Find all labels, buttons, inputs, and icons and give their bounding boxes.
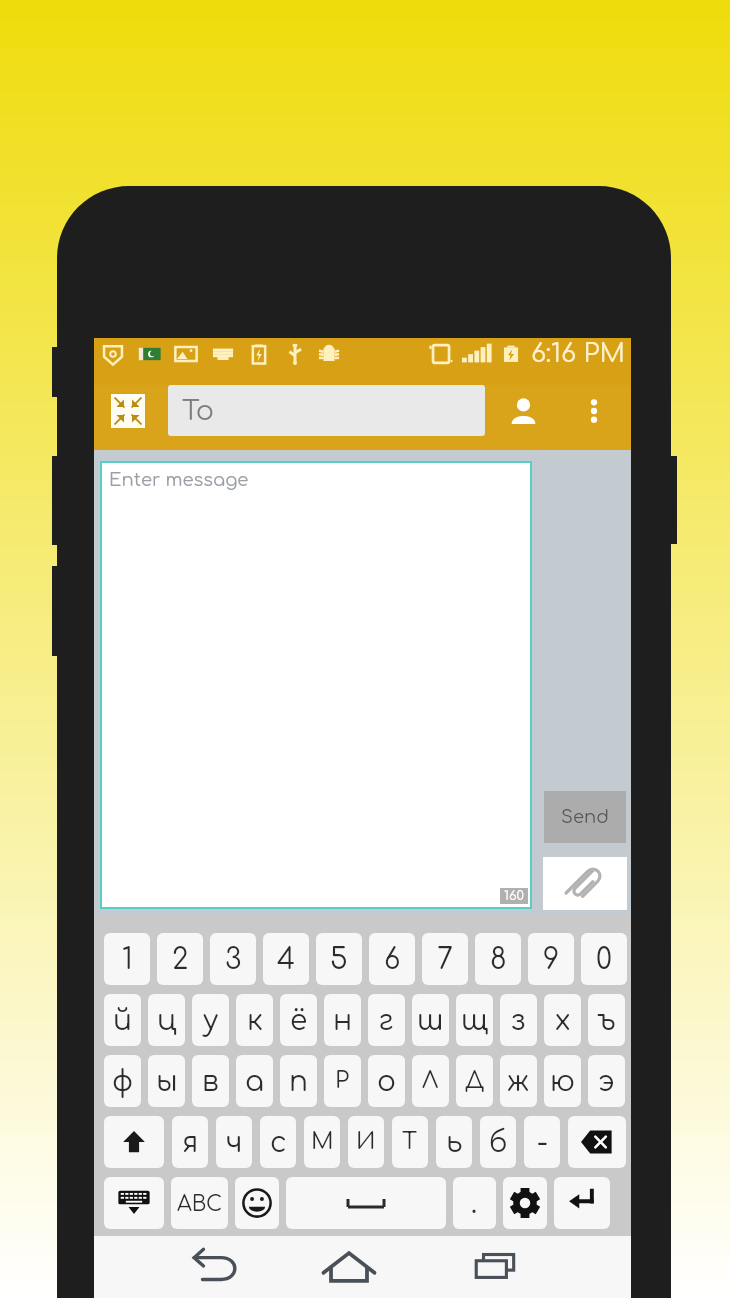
button[interactable]: 0 [581, 933, 627, 985]
button[interactable]: Back [156, 1236, 275, 1298]
staticText: а [245, 1066, 264, 1097]
button[interactable]: Collapse [106, 389, 150, 433]
button[interactable]: б [480, 1116, 516, 1168]
staticText: . [471, 1188, 478, 1219]
button[interactable]: 6 [369, 933, 415, 985]
staticText: э [598, 1066, 615, 1097]
button[interactable]: 4 [263, 933, 309, 985]
staticText: 6:16 PM [531, 339, 626, 368]
staticText: 4 [277, 944, 296, 975]
staticText: ё [290, 1005, 308, 1036]
button[interactable]: ч [216, 1116, 252, 1168]
staticText: ц [157, 1005, 177, 1036]
button[interactable]: Т [392, 1116, 428, 1168]
button[interactable]: Л [412, 1055, 449, 1107]
button[interactable]: э [588, 1055, 625, 1107]
button[interactable]: Shift [104, 1116, 164, 1168]
staticText: Send [561, 807, 609, 827]
button[interactable]: ж [500, 1055, 537, 1107]
staticText: М [311, 1129, 334, 1155]
button[interactable]: с [260, 1116, 296, 1168]
button[interactable]: г [368, 994, 405, 1046]
button[interactable]: ц [148, 994, 185, 1046]
button[interactable]: 2 [157, 933, 203, 985]
button[interactable]: х [544, 994, 581, 1046]
button[interactable]: з [500, 994, 537, 1046]
button[interactable]: ь [436, 1116, 472, 1168]
button[interactable]: ABC [171, 1177, 228, 1229]
button[interactable]: н [324, 994, 361, 1046]
staticText: ABC [177, 1192, 223, 1215]
button[interactable] [286, 1177, 446, 1229]
button[interactable]: я [172, 1116, 208, 1168]
staticText: 9 [543, 944, 560, 975]
staticText: 160 [504, 889, 524, 903]
button[interactable]: Д [456, 1055, 493, 1107]
staticText: ь [446, 1127, 463, 1158]
button[interactable]: 9 [528, 933, 574, 985]
button[interactable]: щ [456, 994, 493, 1046]
button[interactable]: у [192, 994, 229, 1046]
button[interactable]: 5 [316, 933, 362, 985]
button[interactable]: ю [544, 1055, 581, 1107]
staticText: х [555, 1005, 571, 1036]
button[interactable]: й [104, 994, 141, 1046]
button[interactable]: Settings [503, 1177, 547, 1229]
staticText: ф [112, 1066, 134, 1097]
staticText: Т [402, 1129, 418, 1155]
button[interactable]: к [236, 994, 273, 1046]
staticText: к [247, 1005, 263, 1036]
button[interactable]: а [236, 1055, 273, 1107]
button[interactable]: 3 [210, 933, 256, 985]
staticText: 0 [596, 944, 612, 975]
button[interactable]: 1 [104, 933, 150, 985]
staticText: - [537, 1127, 548, 1158]
staticText: 8 [490, 944, 507, 975]
staticText: 1 [122, 944, 133, 975]
button[interactable]: о [368, 1055, 405, 1107]
staticText: 3 [225, 944, 242, 975]
button[interactable]: М [304, 1116, 340, 1168]
button[interactable]: 7 [422, 933, 468, 985]
staticText: о [377, 1066, 396, 1097]
button[interactable]: Р [324, 1055, 361, 1107]
staticText: ы [156, 1066, 178, 1097]
staticText: щ [461, 1005, 489, 1036]
button[interactable]: ш [412, 994, 449, 1046]
button[interactable]: ы [148, 1055, 185, 1107]
button[interactable]: ё [280, 994, 317, 1046]
button[interactable]: Enter [554, 1177, 610, 1229]
button[interactable]: 8 [475, 933, 521, 985]
button[interactable]: More options [574, 391, 614, 431]
button[interactable]: Emoji [235, 1177, 279, 1229]
button[interactable]: . [453, 1177, 496, 1229]
staticText: п [289, 1066, 308, 1097]
staticText: 5 [330, 944, 348, 975]
staticText: н [333, 1005, 353, 1036]
staticText: у [203, 1005, 219, 1036]
button[interactable]: И [348, 1116, 384, 1168]
staticText: в [202, 1066, 219, 1097]
button[interactable]: To [168, 385, 485, 436]
button[interactable]: п [280, 1055, 317, 1107]
staticText: И [356, 1129, 376, 1155]
button[interactable]: - [524, 1116, 560, 1168]
button[interactable]: Backspace [568, 1116, 626, 1168]
staticText: с [270, 1127, 287, 1158]
button[interactable]: Contacts [500, 388, 546, 434]
button[interactable]: Recents [422, 1236, 569, 1298]
staticText: ж [507, 1066, 530, 1097]
button[interactable]: ф [104, 1055, 141, 1107]
button[interactable]: ъ [588, 994, 625, 1046]
button[interactable]: Hide keyboard [104, 1177, 164, 1229]
staticText: Enter message [109, 470, 249, 490]
button[interactable]: Home [275, 1236, 422, 1298]
button[interactable]: Enter message [100, 461, 532, 909]
staticText: ъ [597, 1005, 616, 1036]
staticText: б [489, 1127, 508, 1158]
staticText: Д [465, 1068, 485, 1094]
staticText: 6 [384, 944, 401, 975]
button[interactable]: в [192, 1055, 229, 1107]
button[interactable]: Send [544, 791, 626, 843]
button[interactable]: Attach [543, 857, 627, 910]
